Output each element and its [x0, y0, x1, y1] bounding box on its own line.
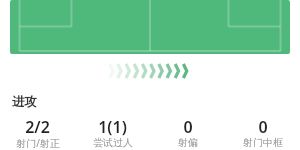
- button[interactable]: 0: [225, 116, 300, 150]
- staticText: 射门/射正: [16, 136, 60, 148]
- staticText: 0: [258, 116, 268, 138]
- staticText: 射偏: [178, 136, 198, 148]
- staticText: 0: [183, 116, 193, 138]
- staticText: 1(1): [98, 116, 127, 138]
- staticText: 尝试过人: [93, 136, 133, 148]
- button[interactable]: 1(1): [75, 116, 150, 150]
- staticText: 2/2: [25, 116, 50, 138]
- staticText: 进攻: [12, 94, 300, 110]
- button[interactable]: 2/2: [0, 116, 75, 150]
- button[interactable]: 0: [150, 116, 225, 150]
- staticText: 射门中框: [243, 136, 283, 148]
